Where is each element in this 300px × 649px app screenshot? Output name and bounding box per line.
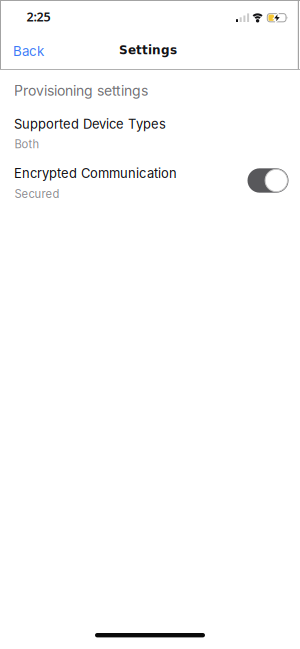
- button[interactable]: Supported Device Types: [0, 106, 300, 157]
- button[interactable]: Encrypted Communication: [247, 168, 288, 193]
- staticText: Provisioning settings: [14, 82, 148, 99]
- staticText: Encrypted Communication: [14, 165, 177, 181]
- button[interactable]: Back: [6, 38, 51, 64]
- staticText: Supported Device Types: [14, 116, 166, 132]
- staticText: Both: [15, 137, 40, 151]
- staticText: 2:25: [26, 8, 50, 25]
- staticText: Secured: [15, 187, 60, 201]
- staticText: Back: [13, 43, 44, 59]
- staticText: Settings: [119, 43, 177, 57]
